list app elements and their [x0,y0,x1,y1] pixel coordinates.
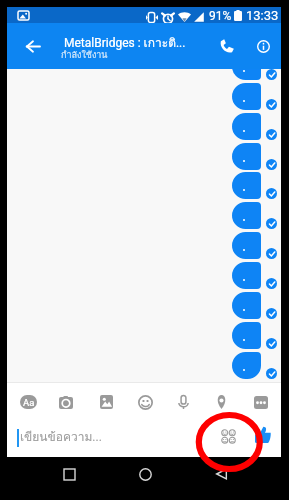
button[interactable]: Send a like [253,425,273,445]
staticText: 13:33 [246,8,279,23]
staticText: เขียนข้อความ... [20,427,102,446]
button[interactable] [232,292,261,319]
button[interactable]: Camera [53,389,79,415]
staticText: MetalBridges : เกาะติ... [64,33,194,52]
button[interactable] [232,262,261,289]
button[interactable] [232,69,261,80]
button[interactable]: Location [208,389,234,415]
button[interactable]: Call [210,28,244,64]
button[interactable]: Photos [93,389,119,415]
button[interactable] [232,143,261,170]
button[interactable]: More options [248,389,274,415]
button[interactable] [232,232,261,259]
button[interactable] [232,113,261,140]
button[interactable] [232,83,261,110]
button[interactable]: Home [132,461,158,487]
staticText: Aa [23,397,35,408]
staticText: กำลังใช้งาน [61,48,108,62]
button[interactable]: Stickers [218,426,238,446]
button[interactable]: Voice message [170,389,196,415]
button[interactable]: Text formatting [15,389,41,415]
button[interactable]: Back [208,461,234,487]
button[interactable] [232,322,261,349]
button[interactable]: Back [14,28,52,64]
button[interactable] [232,172,261,199]
button[interactable] [232,202,261,229]
button[interactable] [232,352,261,379]
button[interactable]: Recent apps [56,461,82,487]
button[interactable]: Emoji [132,389,158,415]
button[interactable]: Conversation details [246,28,280,64]
staticText: 91% [209,9,232,23]
